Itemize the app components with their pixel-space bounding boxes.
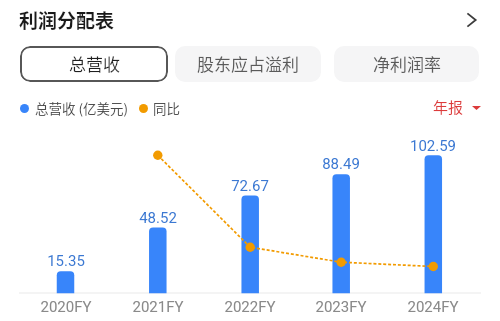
staticText: 2022FY: [215, 298, 285, 316]
staticText: 利润分配表: [19, 6, 115, 34]
staticText: 2023FY: [306, 298, 376, 316]
button[interactable]: 股东应占溢利: [175, 46, 321, 82]
staticText: 股东应占溢利: [197, 51, 299, 76]
staticText: 88.49: [311, 155, 371, 173]
staticText: 总营收: [69, 51, 120, 76]
button[interactable]: 年报: [433, 96, 481, 118]
staticText: 102.59: [403, 137, 463, 155]
staticText: 2021FY: [123, 298, 193, 316]
staticText: 48.52: [128, 209, 188, 227]
staticText: 2020FY: [31, 298, 101, 316]
button[interactable]: 总营收: [20, 46, 168, 82]
staticText: 净利润率: [373, 51, 441, 76]
staticText: 2024FY: [398, 298, 468, 316]
staticText: 年报: [433, 96, 464, 118]
staticText: 同比: [153, 98, 180, 118]
staticText: 72.67: [220, 177, 280, 195]
staticText: 总营收 (亿美元): [35, 98, 129, 118]
button[interactable]: View full profit distribution table: [456, 5, 486, 35]
button[interactable]: 净利润率: [334, 46, 479, 82]
staticText: 15.35: [36, 252, 96, 270]
